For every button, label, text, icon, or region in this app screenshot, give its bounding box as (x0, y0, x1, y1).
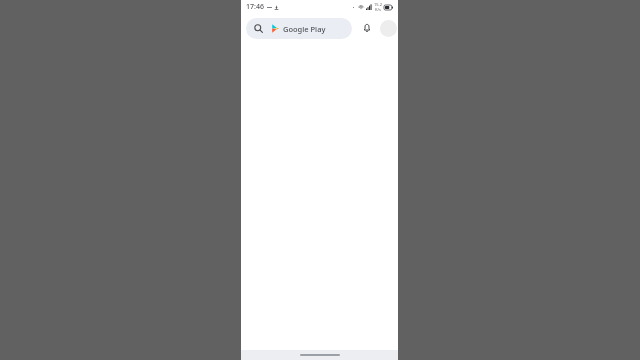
staticText: K/s (375, 7, 381, 12)
staticText: 15.2 (374, 2, 382, 7)
staticText: 17:46 (246, 2, 264, 12)
button[interactable]: Account (380, 20, 397, 37)
button[interactable]: Notifications (358, 19, 376, 37)
button[interactable]: Google Play (246, 18, 352, 39)
staticText: Google Play (283, 24, 326, 34)
other: Home (300, 354, 340, 356)
